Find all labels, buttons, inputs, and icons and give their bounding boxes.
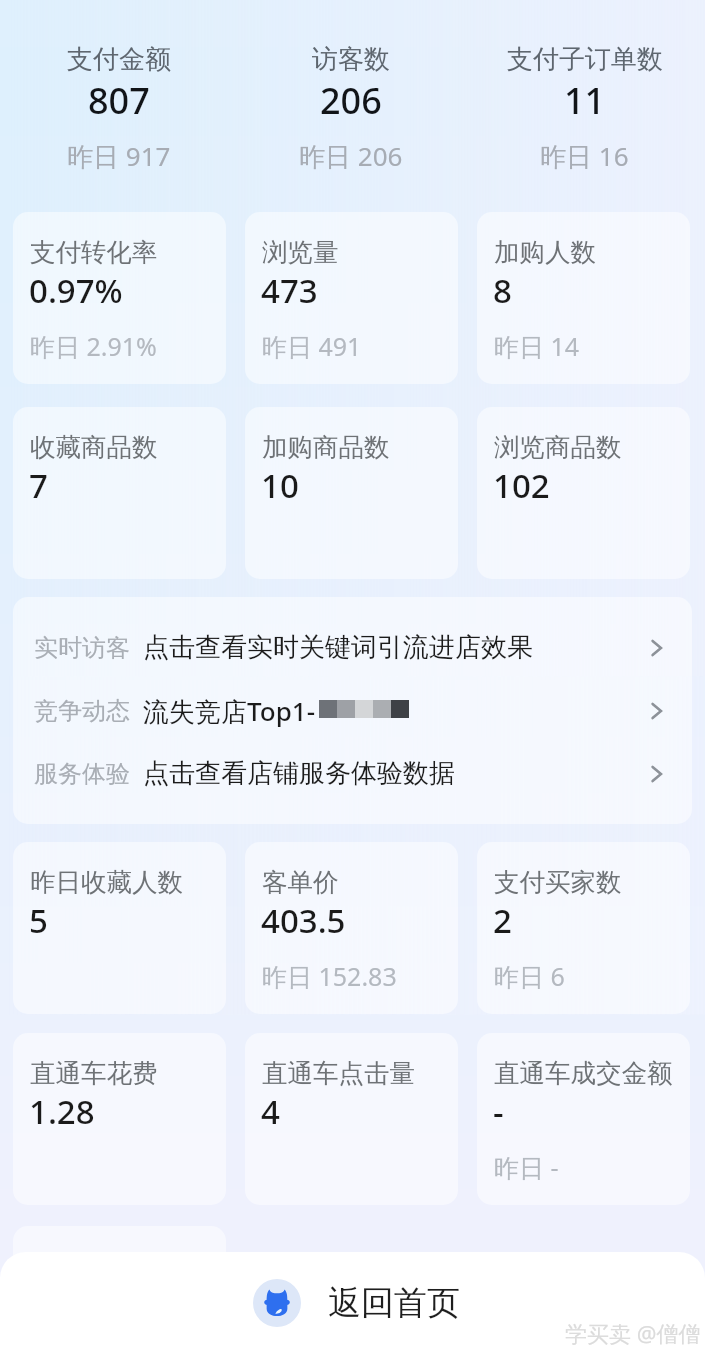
staticText: 403.5 xyxy=(261,898,346,943)
button[interactable]: 昨日收藏人数 xyxy=(13,842,226,1014)
button[interactable]: 加购商品数 xyxy=(245,407,458,579)
button[interactable]: 浏览量 xyxy=(245,212,458,384)
button[interactable]: 实时访客 xyxy=(13,616,692,679)
staticText: 昨日 6 xyxy=(494,959,565,993)
staticText: 4 xyxy=(261,1089,280,1134)
staticText: 昨日 152.83 xyxy=(262,959,397,993)
staticText: 11 xyxy=(564,76,606,125)
staticText: 昨日 14 xyxy=(494,329,580,363)
button[interactable]: 加购人数 xyxy=(477,212,690,384)
staticText: 10 xyxy=(261,463,299,508)
staticText: 直通车花费 xyxy=(30,1057,158,1089)
staticText: - xyxy=(493,1089,504,1134)
staticText: 支付子订单数 xyxy=(507,43,663,76)
staticText: 昨日 917 xyxy=(67,138,171,174)
button[interactable]: 昨日访客数 xyxy=(13,1226,226,1353)
button[interactable]: 直通车点击量 xyxy=(245,1033,458,1205)
other: Open xyxy=(646,637,668,659)
staticText: 实时访客 xyxy=(34,633,130,663)
staticText: 昨日 16 xyxy=(540,138,629,174)
staticText: 收藏商品数 xyxy=(30,431,158,463)
staticText: 支付金额 xyxy=(67,43,171,76)
button[interactable]: 客单价 xyxy=(245,842,458,1014)
staticText: 直通车成交金额 xyxy=(494,1057,673,1089)
staticText: 直通车点击量 xyxy=(262,1057,415,1089)
staticText: 昨日收藏人数 xyxy=(30,866,183,898)
staticText: 昨日 206 xyxy=(299,138,403,174)
button[interactable]: 竞争动态 xyxy=(13,679,692,742)
staticText: 服务体验 xyxy=(34,759,130,789)
staticText: 473 xyxy=(261,268,318,313)
staticText: 昨日 491 xyxy=(262,329,362,363)
staticText: 流失竞店Top1- xyxy=(143,693,316,729)
staticText: 807 xyxy=(88,76,150,125)
other: Open xyxy=(646,700,668,722)
staticText: 竞争动态 xyxy=(34,696,130,726)
staticText: 浏览商品数 xyxy=(494,431,622,463)
button[interactable]: 直通车花费 xyxy=(13,1033,226,1205)
staticText: 2 xyxy=(493,898,512,943)
staticText: 昨日 - xyxy=(494,1150,559,1184)
staticText: 5 xyxy=(29,898,48,943)
staticText: 7 xyxy=(29,463,48,508)
staticText: 加购商品数 xyxy=(262,431,390,463)
staticText: 支付买家数 xyxy=(494,866,622,898)
staticText: 加购人数 xyxy=(494,236,596,268)
button[interactable]: 支付转化率 xyxy=(13,212,226,384)
staticText: 浏览量 xyxy=(262,236,339,268)
staticText: 102 xyxy=(493,463,550,508)
staticText: 访客数 xyxy=(312,43,390,76)
button[interactable]: 直通车成交金额 xyxy=(477,1033,690,1205)
staticText: 点击查看店铺服务体验数据 xyxy=(143,757,455,790)
staticText: 8 xyxy=(493,268,512,313)
staticText: 返回首页 xyxy=(328,1282,460,1324)
staticText: 0.97% xyxy=(29,268,123,313)
staticText: 点击查看实时关键词引流进店效果 xyxy=(143,631,533,664)
staticText: 支付转化率 xyxy=(30,236,158,268)
button[interactable]: 支付买家数 xyxy=(477,842,690,1014)
button[interactable]: 返回首页 xyxy=(247,1277,466,1329)
staticText: 1.28 xyxy=(29,1089,95,1134)
staticText: 206 xyxy=(320,76,382,125)
button[interactable]: 收藏商品数 xyxy=(13,407,226,579)
staticText: 昨日 2.91% xyxy=(30,329,157,363)
button[interactable]: 浏览商品数 xyxy=(477,407,690,579)
staticText: 客单价 xyxy=(262,866,339,898)
button[interactable]: 服务体验 xyxy=(13,742,692,805)
staticText: 学买卖 @僧僧 xyxy=(565,1318,701,1348)
other: Open xyxy=(646,763,668,785)
